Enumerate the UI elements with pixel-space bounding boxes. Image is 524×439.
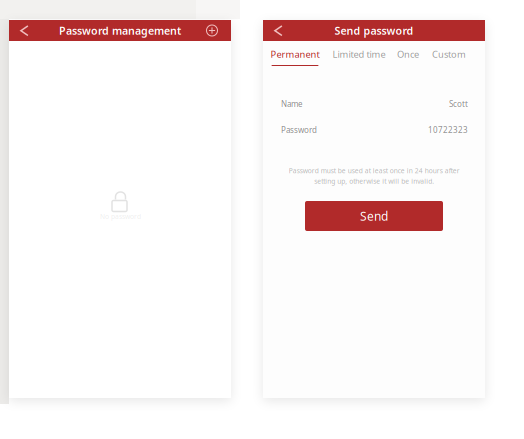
button[interactable]: Password <box>263 117 485 143</box>
staticText: Once <box>397 48 419 60</box>
button[interactable]: Back <box>266 20 290 41</box>
staticText: Custom <box>432 48 466 60</box>
button[interactable]: Permanent <box>270 41 319 67</box>
staticText: Password management <box>59 23 181 38</box>
staticText: Send password <box>334 23 413 38</box>
staticText: 10722323 <box>428 125 468 135</box>
button[interactable]: Name <box>263 91 485 117</box>
staticText: Scott <box>449 99 468 109</box>
staticText: Permanent <box>270 48 319 60</box>
staticText: Password must be used at least once in 2… <box>288 166 459 186</box>
button[interactable]: Once <box>384 41 431 67</box>
staticText: Send <box>360 208 388 224</box>
button[interactable]: Limited time <box>332 41 385 67</box>
button[interactable]: Send <box>305 201 443 231</box>
staticText: Limited time <box>332 48 385 60</box>
staticText: Name <box>281 99 303 109</box>
staticText: Password <box>281 125 317 135</box>
button[interactable]: Back <box>12 20 36 41</box>
button[interactable]: Add password <box>200 20 224 41</box>
staticText: No password <box>100 212 141 221</box>
button[interactable]: Custom <box>425 41 472 67</box>
